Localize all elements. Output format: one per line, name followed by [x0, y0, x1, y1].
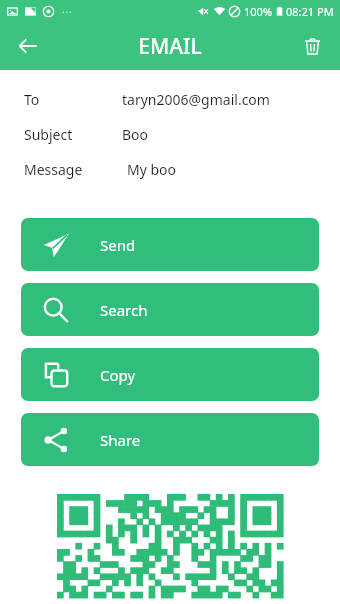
staticText: Search: [100, 300, 148, 320]
staticText: EMAIL: [138, 32, 202, 61]
staticText: Send: [100, 235, 136, 255]
staticText: 08:21 PM: [286, 4, 334, 19]
staticText: 100%: [244, 4, 273, 19]
staticText: Boo: [122, 125, 149, 144]
button[interactable]: Send: [21, 218, 319, 271]
button[interactable]: Back: [8, 26, 48, 66]
button[interactable]: Search: [21, 283, 319, 336]
staticText: To: [24, 90, 40, 109]
staticText: Share: [100, 430, 141, 450]
staticText: Copy: [100, 365, 136, 385]
staticText: Subject: [24, 125, 73, 144]
staticText: My boo: [127, 160, 177, 179]
staticText: taryn2006@gmail.com: [122, 90, 270, 109]
button[interactable]: Copy: [21, 348, 319, 401]
button[interactable]: Share: [21, 413, 319, 466]
staticText: Message: [24, 160, 83, 179]
button[interactable]: Delete: [292, 26, 332, 66]
